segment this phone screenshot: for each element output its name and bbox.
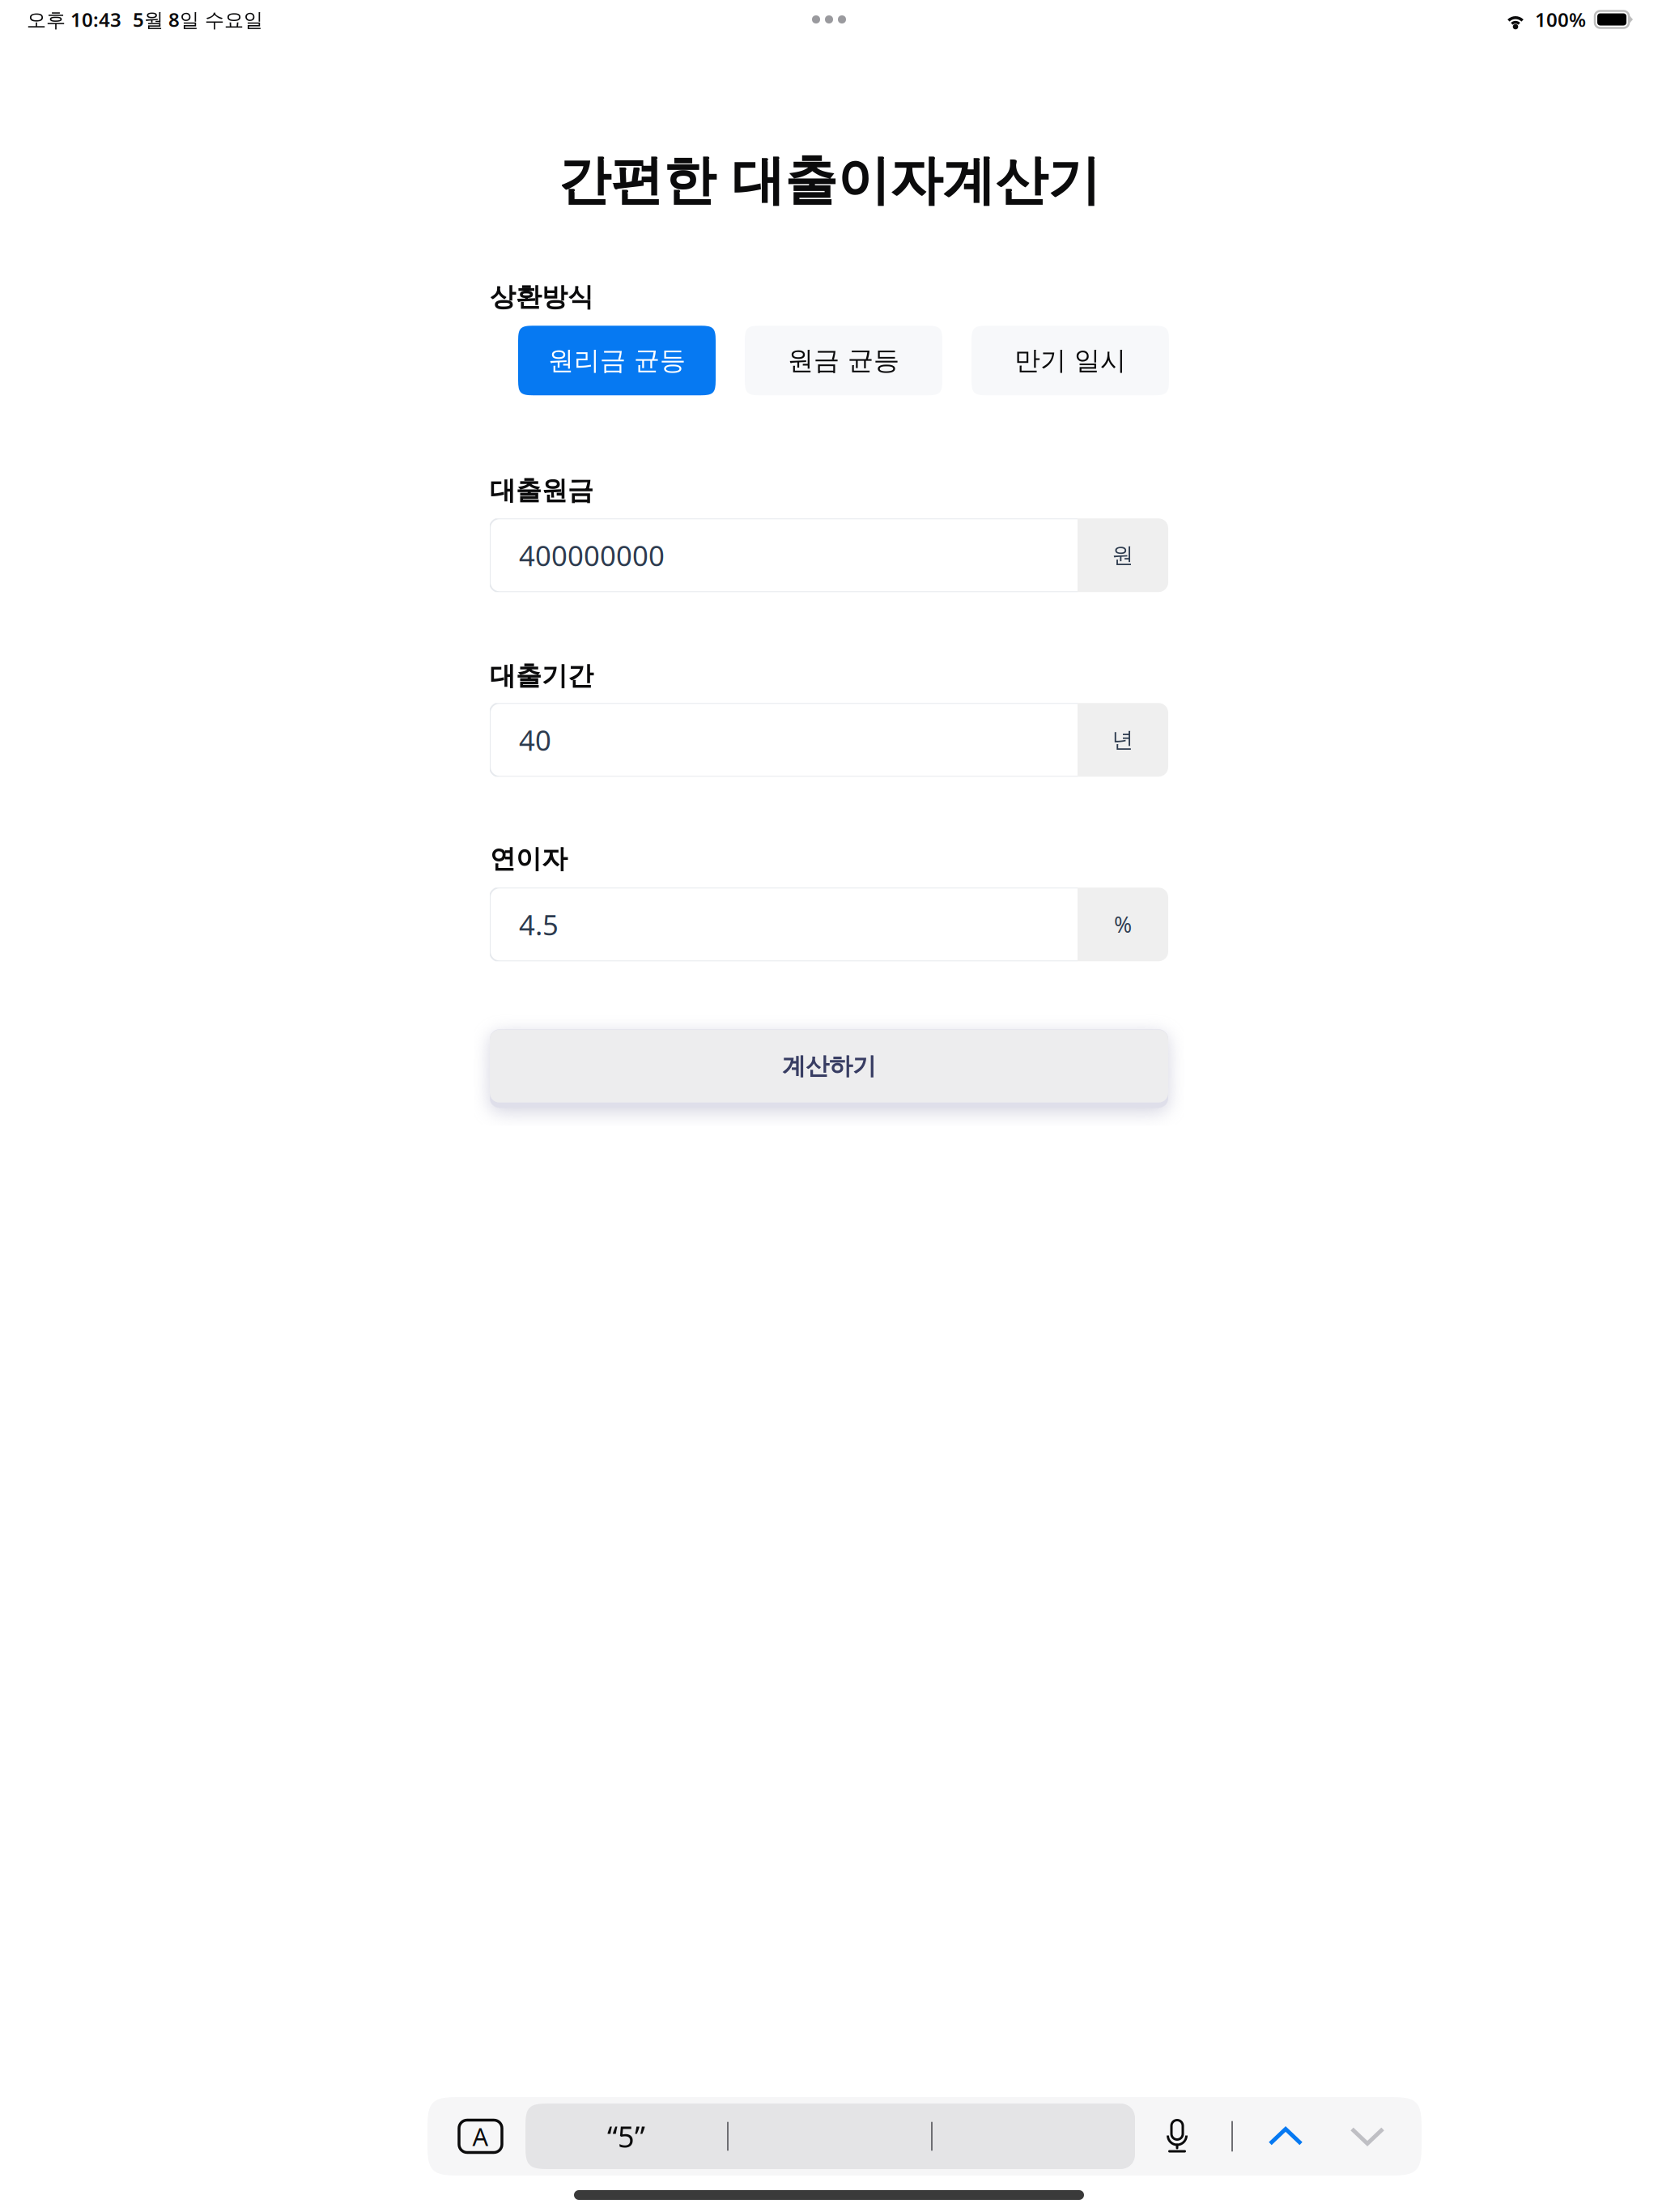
staticText: 40	[519, 721, 551, 758]
staticText: A	[472, 2120, 489, 2153]
button[interactable]: “5”	[525, 2104, 727, 2169]
button[interactable]: 원리금 균등	[518, 326, 716, 395]
staticText: 연이자	[490, 843, 568, 875]
staticText: 만기 일시	[1014, 345, 1126, 376]
staticText: 간편한 대출이자계산기	[558, 148, 1100, 213]
staticText: “5”	[607, 2117, 645, 2156]
staticText: 100%	[1535, 7, 1586, 32]
staticText: 대출원금	[490, 475, 593, 506]
button[interactable]: 원금 균등	[745, 326, 942, 395]
button[interactable]: Dictate	[1166, 2120, 1188, 2152]
button[interactable]: Keyboard type	[459, 2120, 502, 2152]
staticText: 년	[1112, 727, 1134, 753]
button[interactable]: Previous field	[1268, 2125, 1303, 2148]
staticText: 계산하기	[782, 1052, 876, 1081]
staticText: %	[1114, 910, 1132, 939]
staticText: 대출기간	[490, 660, 593, 692]
staticText: 오후 10:43	[27, 7, 121, 32]
staticText: 원리금 균등	[548, 345, 686, 376]
staticText: 원	[1112, 542, 1134, 569]
staticText: 상환방식	[490, 281, 593, 313]
staticText: 원금 균등	[788, 345, 899, 376]
button[interactable]: 계산하기	[490, 1027, 1168, 1108]
staticText: 400000000	[519, 537, 665, 574]
staticText: 5월 8일 수요일	[133, 7, 263, 32]
button[interactable]: Next field	[1350, 2125, 1385, 2148]
staticText: 4.5	[519, 906, 559, 943]
button[interactable]: 만기 일시	[971, 326, 1169, 395]
